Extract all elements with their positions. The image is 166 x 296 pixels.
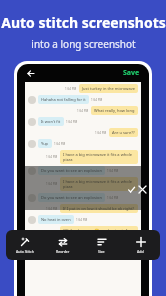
button[interactable]: Auto Stitch [6, 230, 44, 260]
staticText: Do you want to see an explosion [41, 195, 102, 200]
staticText: 1:54 PM [66, 120, 78, 124]
staticText: OK thanks mom 🙄 no short cuts I guess [63, 228, 135, 238]
staticText: 1:54 PM [77, 109, 89, 113]
button[interactable]: Back [24, 67, 36, 79]
staticText: Do you want to see an explosion [41, 168, 102, 173]
button[interactable]: Size [82, 230, 121, 260]
staticText: I have a big microwave it fits a whole p… [63, 179, 135, 189]
staticText: Are u sure?? [112, 130, 135, 135]
staticText: 1:54 PM [46, 207, 58, 211]
button[interactable]: Save [121, 66, 142, 80]
button[interactable]: Add [121, 230, 160, 260]
staticText: 1:54 PM [65, 87, 77, 91]
staticText: 1:54 PM [46, 155, 58, 159]
staticText: It won't fit [41, 119, 61, 124]
staticText: Save [123, 68, 140, 78]
staticText: 1:54 PM [95, 131, 107, 135]
staticText: 1:54 PM [76, 218, 88, 222]
staticText: 1:54 PM [107, 169, 119, 173]
staticText: into a long screenshot [31, 37, 136, 51]
button[interactable]: Accept [126, 184, 137, 195]
staticText: 1:54 PM [107, 196, 119, 200]
staticText: Reorder [56, 249, 70, 254]
staticText: Yup [41, 141, 49, 146]
staticText: Hahaha not falling for it [41, 97, 86, 102]
button[interactable]: Reorder [44, 230, 82, 260]
staticText: 1:54 PM [91, 98, 103, 102]
staticText: If I put in on low it should be ok right… [63, 206, 135, 211]
staticText: Just turkey in the microwave [82, 86, 135, 91]
staticText: No heat in oven [41, 217, 71, 222]
staticText: Add [137, 249, 144, 254]
staticText: 1:54 PM [46, 182, 58, 186]
staticText: 1:54 PM [54, 142, 66, 146]
staticText: Auto Stitch [16, 249, 34, 254]
staticText: Auto stitch screenshots [1, 13, 166, 32]
staticText: I have a big microwave it fits a whole p… [63, 152, 135, 162]
staticText: Size [98, 249, 105, 254]
button[interactable]: Cancel [137, 184, 148, 195]
staticText: What really, how long [94, 108, 135, 113]
